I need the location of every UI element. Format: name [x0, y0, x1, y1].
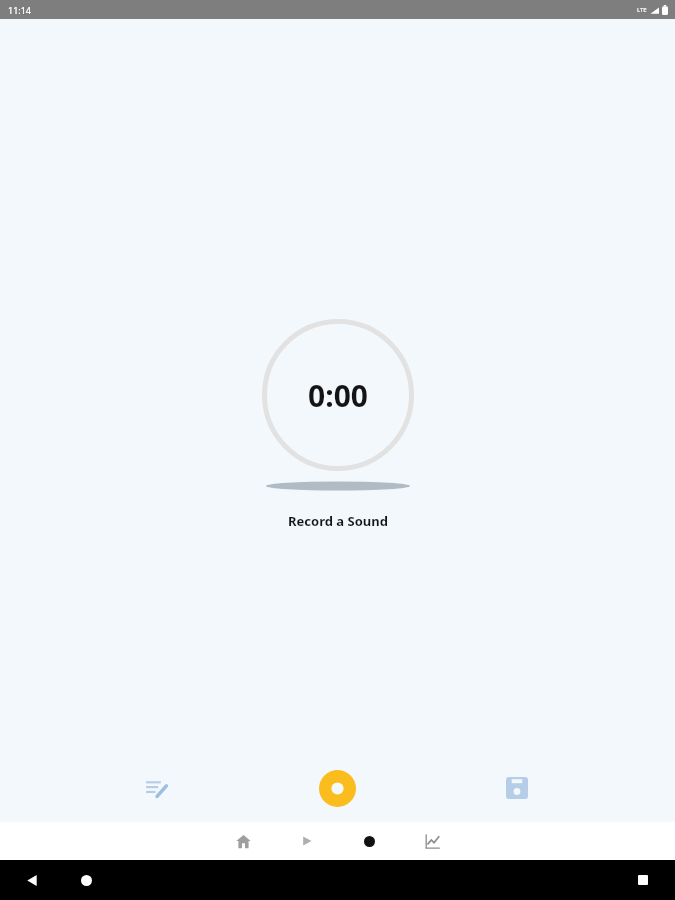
button[interactable]: Home [212, 822, 275, 860]
button[interactable]: Save [495, 766, 539, 810]
staticText: Record a Sound [288, 512, 388, 530]
button[interactable]: Home [70, 864, 102, 896]
staticText: 0:00 [308, 375, 368, 416]
staticText: 11:14 [8, 4, 32, 16]
button[interactable]: Recent apps [627, 864, 659, 896]
button[interactable]: Edit notes [134, 766, 178, 810]
button[interactable]: Play [275, 822, 338, 860]
button[interactable]: Record tab [338, 822, 401, 860]
button[interactable]: Back [16, 864, 48, 896]
button[interactable]: Statistics [401, 822, 464, 860]
staticText: LTE [637, 6, 647, 14]
button[interactable]: Record [311, 762, 363, 814]
button[interactable]: 0:00 [262, 319, 414, 471]
